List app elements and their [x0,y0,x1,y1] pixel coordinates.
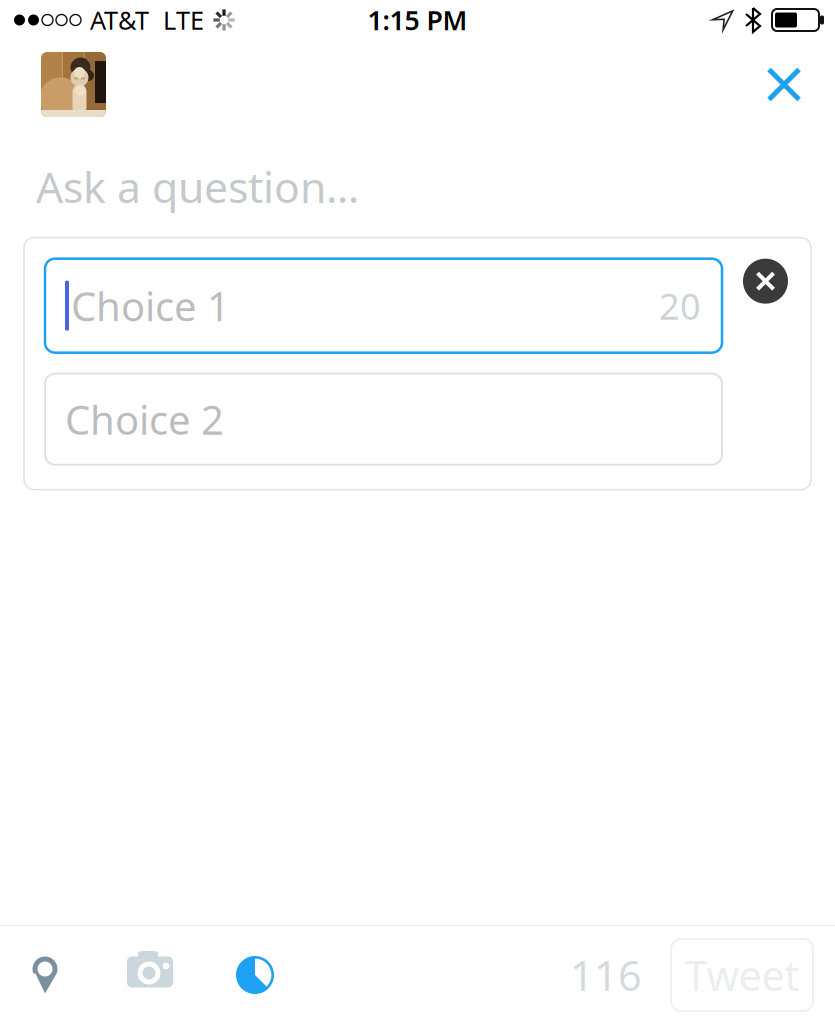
button[interactable]: Location [12,939,78,1011]
button[interactable]: Close [757,57,811,111]
staticText: Choice 1 [71,279,230,332]
staticText: 116 [570,948,642,1002]
staticText: Ask a question... [36,158,359,215]
staticText: Choice 2 [65,393,224,446]
button[interactable]: Remove choice [743,259,788,304]
staticText: LTE [163,3,204,37]
button[interactable]: Tweet [671,939,813,1011]
button[interactable]: Camera [117,939,183,1011]
staticText: 1:15 PM [367,2,467,38]
staticText: Tweet [684,948,799,1002]
button[interactable]: Poll [222,939,288,1011]
staticText: 20 [659,282,701,330]
staticText: AT&T [90,3,149,37]
